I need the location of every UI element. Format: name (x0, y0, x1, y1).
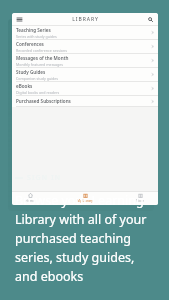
staticText: My Library (77, 199, 93, 203)
button[interactable]: More (127, 193, 153, 203)
button[interactable]: eBooks (12, 82, 158, 96)
button[interactable]: Purchased Subscriptions (12, 96, 158, 107)
staticText: Study Guides (16, 69, 46, 75)
staticText: More (136, 199, 144, 203)
staticText: Home (25, 199, 35, 203)
staticText: Monthly featured messages (16, 62, 64, 67)
button[interactable]: Messages of the Month (12, 54, 158, 68)
button[interactable]: Menu (15, 15, 24, 24)
button[interactable]: Search (146, 15, 155, 24)
staticText: Digital books and readers (16, 90, 60, 95)
staticText: Messages of the Month (16, 55, 69, 61)
staticText: Recorded conference sessions (16, 48, 67, 53)
button[interactable]: My Library (72, 193, 98, 203)
button[interactable]: Home (17, 193, 43, 203)
staticText: eBooks (16, 83, 33, 89)
button[interactable]: Teaching Series (12, 26, 158, 40)
staticText: Purchased Subscriptions (16, 98, 71, 104)
staticText: Companion study guides (16, 76, 59, 81)
staticText: LIBRARY (72, 16, 99, 23)
button[interactable]: Study Guides (12, 68, 158, 82)
staticText: Series with study guides (16, 34, 57, 39)
staticText: Browse your Learning Library with all of… (15, 192, 159, 284)
staticText: Teaching Series (16, 27, 51, 33)
staticText: Conferences (16, 41, 44, 47)
button[interactable]: Conferences (12, 40, 158, 54)
